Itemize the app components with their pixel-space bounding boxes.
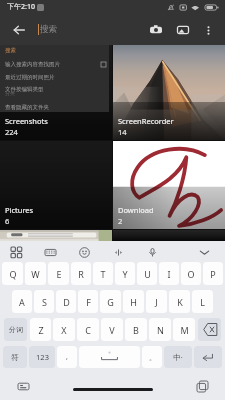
button[interactable]: 。: [142, 346, 162, 368]
staticText: R: [78, 268, 84, 280]
staticText: 123: [36, 352, 49, 362]
button[interactable]: G: [100, 290, 121, 313]
staticText: 查看隐藏的文件夹: [5, 104, 49, 111]
button[interactable]: T: [93, 262, 113, 285]
staticText: U: [144, 268, 151, 280]
staticText: E: [56, 268, 62, 280]
staticText: 符: [11, 353, 19, 362]
button[interactable]: Y: [115, 262, 135, 285]
button[interactable]: X: [53, 318, 75, 341]
staticText: L: [200, 296, 205, 308]
staticText: 文件按编辑类型: [5, 86, 44, 93]
staticText: Q: [9, 268, 17, 280]
button[interactable]: 123: [29, 346, 55, 368]
staticText: Z: [38, 324, 44, 336]
staticText: F: [86, 296, 91, 308]
staticText: 搜索: [40, 24, 57, 35]
staticText: H: [130, 296, 137, 308]
button[interactable]: More options: [196, 18, 220, 42]
button[interactable]: Q: [2, 262, 23, 285]
staticText: 。: [149, 353, 156, 362]
button[interactable]: M: [173, 318, 195, 341]
staticText: 最近过期的时间照片: [5, 74, 55, 81]
staticText: Y: [122, 268, 128, 280]
button[interactable]: Hide keyboard: [194, 242, 214, 262]
button[interactable]: Enter: [194, 346, 222, 368]
button[interactable]: Back: [0, 14, 38, 45]
button[interactable]: Space: [79, 346, 140, 368]
button[interactable]: ,: [57, 346, 77, 368]
button[interactable]: A: [12, 290, 32, 313]
button[interactable]: Gallery: [169, 16, 196, 43]
button[interactable]: [113, 230, 225, 241]
button[interactable]: Move cursor: [108, 242, 128, 262]
button[interactable]: Pictures: [0, 141, 112, 229]
staticText: J: [155, 296, 158, 308]
staticText: M: [180, 324, 189, 336]
button[interactable]: 符: [3, 346, 27, 368]
staticText: 下午2:10: [7, 2, 35, 12]
button[interactable]: 查看隐藏的文件夹: [0, 102, 109, 112]
button[interactable]: D: [56, 290, 76, 313]
button[interactable]: 最近过期的时间照片: [0, 72, 109, 82]
staticText: S: [42, 296, 47, 308]
button[interactable]: P: [203, 262, 223, 285]
button[interactable]: S: [34, 290, 54, 313]
button[interactable]: U: [137, 262, 157, 285]
button[interactable]: K: [169, 290, 190, 313]
button[interactable]: [0, 230, 112, 241]
staticText: D: [63, 296, 70, 308]
staticText: 2: [118, 216, 123, 226]
button[interactable]: B: [125, 318, 147, 341]
staticText: W: [31, 268, 40, 280]
staticText: T: [100, 268, 106, 280]
staticText: X: [61, 324, 67, 336]
button[interactable]: H: [123, 290, 144, 313]
button[interactable]: 分词: [4, 318, 27, 341]
staticText: 输入搜索内容查找图片: [5, 61, 60, 68]
button[interactable]: W: [25, 262, 46, 285]
staticText: Pictures: [5, 205, 34, 215]
button[interactable]: Switch keyboard: [12, 375, 34, 397]
button[interactable]: R: [71, 262, 91, 285]
staticText: N: [157, 324, 164, 336]
button[interactable]: Keyboard layouts: [6, 242, 26, 262]
staticText: ScreenRecorder: [118, 116, 174, 126]
button[interactable]: Voice input: [142, 242, 162, 262]
staticText: 搜索: [5, 47, 16, 54]
staticText: Download: [118, 205, 154, 215]
button[interactable]: Clipboard: [191, 375, 213, 397]
button[interactable]: 文件按编辑类型: [0, 84, 109, 94]
button[interactable]: N: [149, 318, 171, 341]
button[interactable]: F: [78, 290, 98, 313]
button[interactable]: Camera: [142, 16, 169, 43]
staticText: 中·: [173, 352, 183, 362]
staticText: C: [85, 324, 91, 336]
staticText: P: [210, 268, 216, 280]
staticText: 224: [5, 127, 18, 137]
button[interactable]: J: [146, 290, 167, 313]
button[interactable]: Keyboard: [40, 242, 60, 262]
button[interactable]: 中·: [164, 346, 192, 368]
button[interactable]: Backspace: [198, 318, 221, 341]
button[interactable]: E: [48, 262, 69, 285]
button[interactable]: O: [181, 262, 201, 285]
staticText: 6: [5, 216, 10, 226]
staticText: V: [109, 324, 115, 336]
button[interactable]: Z: [30, 318, 51, 341]
button[interactable]: C: [77, 318, 99, 341]
staticText: K: [177, 296, 183, 308]
button[interactable]: Download: [113, 141, 225, 229]
staticText: 分词: [9, 325, 23, 334]
staticText: G: [107, 296, 114, 308]
staticText: ,: [66, 352, 68, 362]
button[interactable]: L: [192, 290, 213, 313]
button[interactable]: ScreenRecorder: [113, 45, 225, 140]
button[interactable]: Emoji: [74, 242, 94, 262]
staticText: O: [187, 268, 195, 280]
staticText: 14: [118, 127, 127, 137]
button[interactable]: V: [101, 318, 123, 341]
button[interactable]: Screenshots: [0, 45, 112, 140]
button[interactable]: 输入搜索内容查找图片: [0, 59, 109, 69]
button[interactable]: I: [159, 262, 179, 285]
